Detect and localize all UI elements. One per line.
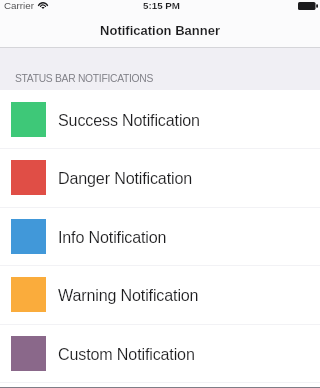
other: Battery full [298, 2, 318, 10]
button[interactable]: Custom Notification [0, 324, 320, 382]
staticText: Carrier [4, 0, 34, 11]
staticText: Danger Notification [58, 169, 193, 187]
staticText: Warning Notification [58, 286, 199, 304]
staticText: Info Notification [58, 228, 167, 246]
button[interactable]: Success Notification [0, 90, 320, 148]
button[interactable]: Danger Notification [0, 148, 320, 206]
staticText: Success Notification [58, 111, 200, 129]
staticText: Notification Banner [100, 23, 220, 38]
button[interactable]: Info Notification [0, 207, 320, 265]
staticText: STATUS BAR NOTIFICATIONS [15, 73, 154, 85]
staticText: Custom Notification [58, 345, 195, 363]
button[interactable]: Warning Notification [0, 265, 320, 323]
other: Wi-Fi signal [38, 2, 48, 9]
staticText: 5:15 PM [143, 0, 181, 11]
